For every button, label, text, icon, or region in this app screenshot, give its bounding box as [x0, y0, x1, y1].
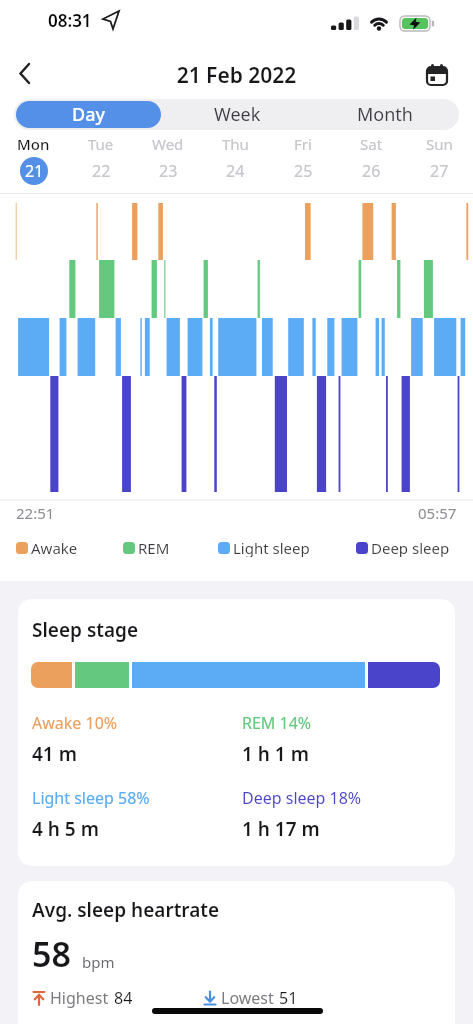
staticText: Sat	[360, 134, 383, 154]
button[interactable]: Fri	[269, 134, 337, 190]
button[interactable]	[420, 64, 454, 98]
staticText: Sleep stage	[32, 617, 139, 643]
button[interactable]: Wed	[134, 134, 201, 190]
staticText: 08:31	[48, 9, 92, 32]
staticText: Sun	[426, 134, 453, 154]
staticText: 24	[226, 160, 245, 182]
button[interactable]: Month	[311, 99, 459, 130]
staticText: Tue	[88, 134, 114, 154]
staticText: 58	[32, 931, 71, 977]
staticText: 05:57	[418, 503, 457, 523]
staticText: bpm	[82, 952, 115, 972]
staticText: REM	[138, 538, 170, 557]
staticText: Awake	[31, 538, 78, 557]
staticText: 22	[92, 160, 111, 182]
staticText: Light sleep 58%	[32, 787, 150, 809]
staticText: Light sleep	[233, 538, 310, 557]
staticText: Day	[72, 102, 105, 127]
staticText: Month	[357, 102, 413, 127]
staticText: Avg. sleep heartrate	[32, 897, 220, 923]
staticText: 41 m	[32, 741, 77, 767]
staticText: Mon	[17, 134, 50, 154]
staticText: 22:51	[16, 503, 55, 523]
staticText: Thu	[222, 134, 249, 154]
button[interactable]: Day	[16, 101, 161, 128]
staticText: 84	[114, 987, 133, 1009]
staticText: 23	[159, 160, 178, 182]
staticText: Week	[214, 102, 261, 127]
staticText: Fri	[294, 134, 312, 154]
staticText: 21	[25, 160, 44, 182]
staticText: Awake 10%	[32, 712, 118, 734]
button[interactable]: Thu	[201, 134, 269, 190]
staticText: Deep sleep 18%	[242, 787, 362, 809]
button[interactable]: Mon	[0, 134, 67, 190]
staticText: 4 h 5 m	[32, 816, 99, 842]
staticText: 21 Feb 2022	[0, 61, 473, 90]
staticText: 27	[430, 160, 449, 182]
staticText: 1 h 17 m	[242, 816, 320, 842]
staticText: Wed	[152, 134, 184, 154]
staticText: REM 14%	[242, 712, 312, 734]
staticText: 26	[362, 160, 381, 182]
staticText: 51	[279, 987, 298, 1009]
button[interactable]	[8, 58, 40, 90]
staticText: Deep sleep	[371, 538, 450, 557]
button[interactable]: Tue	[67, 134, 134, 190]
staticText: Highest	[50, 987, 109, 1009]
staticText: Lowest	[221, 987, 274, 1009]
button[interactable]: Sun	[405, 134, 473, 190]
button[interactable]: Sat	[337, 134, 405, 190]
staticText: 1 h 1 m	[242, 741, 309, 767]
staticText: 25	[294, 160, 313, 182]
button[interactable]: Week	[163, 99, 311, 130]
